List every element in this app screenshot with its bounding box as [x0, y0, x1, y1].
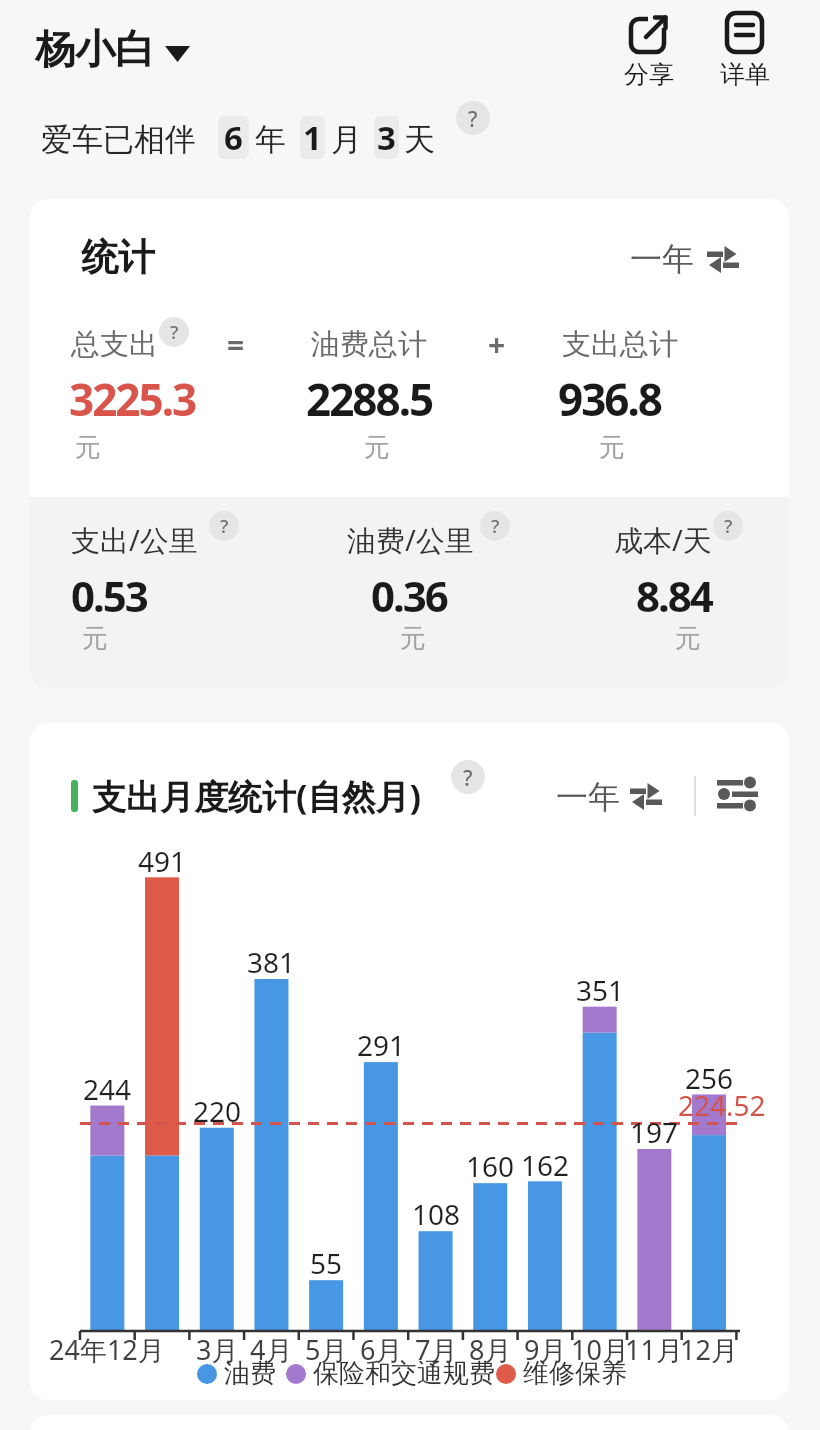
staticText: 224.52 — [678, 1086, 766, 1124]
staticText: 244 — [83, 1070, 132, 1108]
button[interactable]: ? — [209, 511, 239, 541]
staticText: 元 — [75, 431, 101, 464]
staticText: ? — [724, 513, 733, 539]
staticText: 总支出 — [71, 326, 158, 363]
staticText: 月 — [331, 120, 362, 159]
staticText: 7月 — [415, 1331, 458, 1368]
staticText: 1 — [303, 115, 322, 160]
staticText: 元 — [599, 431, 625, 464]
staticText: 元 — [364, 431, 390, 464]
button[interactable] — [711, 8, 781, 90]
staticText: 支出月度统计(自然月) — [92, 773, 422, 819]
staticText: 256 — [685, 1059, 734, 1097]
staticText: 12月 — [680, 1331, 738, 1368]
staticText: 0.36 — [371, 567, 447, 624]
staticText: 4月 — [250, 1331, 293, 1368]
staticText: 11月 — [625, 1331, 683, 1368]
staticText: 维修保养 — [523, 1357, 627, 1390]
staticText: 0.53 — [71, 567, 147, 624]
staticText: 351 — [576, 971, 625, 1009]
staticText: 油费总计 — [311, 326, 427, 363]
staticText: 381 — [247, 943, 296, 981]
staticText: 杨小白 — [35, 24, 155, 74]
button[interactable] — [615, 8, 685, 90]
staticText: 936.8 — [558, 369, 662, 429]
staticText: 年 — [255, 120, 286, 159]
staticText: 491 — [138, 842, 187, 880]
staticText: ? — [170, 319, 179, 345]
staticText: 保险和交通规费 — [313, 1357, 495, 1390]
staticText: 元 — [82, 622, 108, 655]
staticText: 支出/公里 — [71, 520, 198, 560]
button[interactable] — [33, 30, 193, 70]
staticText: 8月 — [469, 1331, 512, 1368]
button[interactable] — [707, 246, 739, 273]
staticText: 6月 — [360, 1331, 403, 1368]
staticText: 9月 — [524, 1331, 567, 1368]
staticText: 3月 — [196, 1331, 239, 1368]
staticText: 分享 — [624, 59, 674, 90]
button[interactable] — [526, 770, 671, 820]
button[interactable]: ? — [713, 511, 743, 541]
staticText: 6 — [224, 115, 243, 160]
staticText: 108 — [412, 1195, 461, 1233]
staticText: 详单 — [720, 59, 770, 90]
staticText: 一年 — [630, 239, 694, 279]
button[interactable] — [717, 779, 758, 812]
staticText: 天 — [404, 120, 435, 159]
staticText: 291 — [357, 1026, 406, 1064]
staticText: 3225.3 — [69, 369, 196, 429]
staticText: 成本/天 — [614, 520, 712, 560]
staticText: 3 — [377, 115, 396, 160]
staticText: 元 — [400, 622, 426, 655]
button[interactable]: ? — [451, 760, 485, 794]
staticText: = — [227, 324, 245, 365]
button[interactable]: ? — [456, 101, 490, 135]
staticText: 支出总计 — [562, 326, 678, 363]
button[interactable] — [630, 783, 662, 810]
staticText: 162 — [521, 1146, 570, 1184]
button[interactable]: ? — [480, 511, 510, 541]
staticText: + — [488, 324, 506, 365]
staticText: 160 — [466, 1147, 515, 1185]
staticText: 爱车已相伴 — [41, 120, 196, 159]
staticText: 220 — [193, 1092, 242, 1130]
button[interactable] — [600, 235, 760, 285]
staticText: ? — [463, 763, 473, 792]
button[interactable]: ? — [159, 317, 189, 347]
staticText: ? — [220, 513, 229, 539]
staticText: 油费/公里 — [347, 520, 474, 560]
staticText: 10月 — [571, 1331, 629, 1368]
staticText: 197 — [630, 1113, 679, 1151]
staticText: 55 — [310, 1244, 343, 1282]
staticText: 8.84 — [636, 567, 712, 624]
staticText: 2288.5 — [306, 369, 433, 429]
staticText: 5月 — [305, 1331, 348, 1368]
staticText: ? — [491, 513, 500, 539]
staticText: ? — [468, 104, 478, 133]
staticText: 一年 — [556, 777, 620, 817]
staticText: 统计 — [81, 234, 155, 281]
staticText: 24年12月 — [49, 1331, 165, 1368]
staticText: 油费 — [224, 1357, 276, 1390]
staticText: 元 — [675, 622, 701, 655]
